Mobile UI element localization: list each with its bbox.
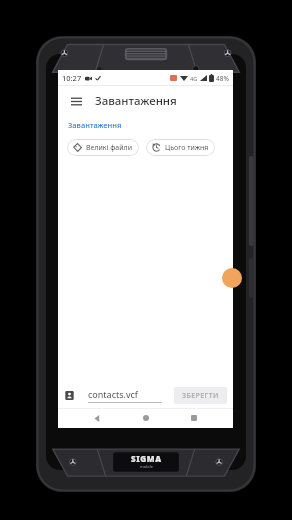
button[interactable]: ЗБЕРЕГТИ (174, 387, 227, 404)
staticText: 10:27 (62, 73, 82, 83)
staticText: mobile (140, 464, 153, 469)
staticText: 48% (216, 74, 229, 83)
button[interactable]: Back (87, 408, 107, 428)
staticText: Цього тижня (165, 143, 209, 153)
button[interactable]: Завантаження (68, 120, 122, 130)
staticText: ЗБЕРЕГТИ (182, 391, 219, 401)
button[interactable]: Home (136, 408, 156, 428)
button[interactable]: Add (222, 268, 242, 288)
staticText: 4G (190, 75, 198, 82)
button[interactable]: Великі файли (67, 139, 139, 156)
staticText: Завантаження (95, 93, 177, 109)
staticText: Завантаження (68, 120, 122, 130)
staticText: SIGMA (131, 453, 162, 464)
button[interactable]: Menu (67, 92, 85, 110)
button[interactable]: Цього тижня (146, 139, 215, 156)
button[interactable]: Recents (184, 408, 204, 428)
staticText: Великі файли (86, 143, 133, 153)
staticText: contacts.vcf (88, 388, 138, 400)
